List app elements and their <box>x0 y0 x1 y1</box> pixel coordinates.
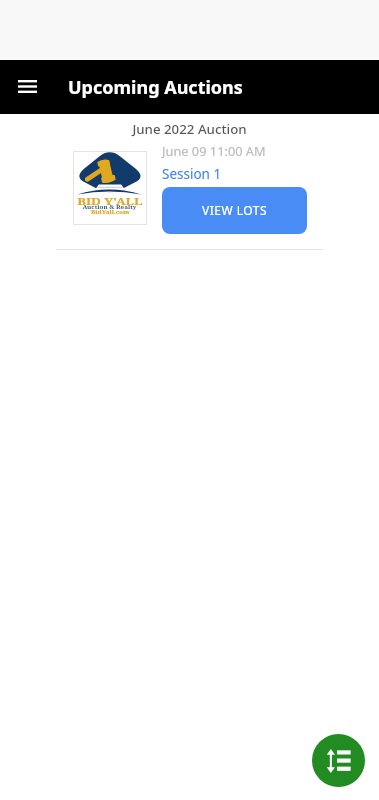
button[interactable]: Session 1 <box>162 165 222 183</box>
button[interactable]: VIEW LOTS <box>162 187 307 234</box>
button[interactable]: Open navigation menu <box>8 68 46 106</box>
staticText: Auction & Realty <box>82 203 137 211</box>
button[interactable]: Sort <box>312 734 365 787</box>
staticText: June 2022 Auction <box>0 120 379 138</box>
staticText: VIEW LOTS <box>202 202 268 218</box>
staticText: Upcoming Auctions <box>68 75 243 100</box>
staticText: June 09 11:00 AM <box>162 142 266 159</box>
staticText: BID Y'ALL <box>77 195 143 207</box>
staticText: BidYall.com <box>91 208 130 216</box>
